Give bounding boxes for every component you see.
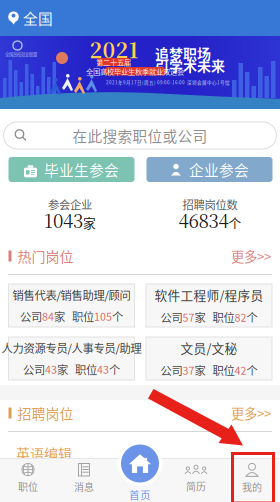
staticText: 更多>> [231, 246, 271, 266]
staticText: 家 [57, 361, 68, 377]
staticText: 软件工程师/程序员 [154, 286, 263, 304]
button[interactable]: 企业参会 [146, 157, 272, 182]
staticText: 追梦职场 [155, 43, 211, 63]
staticText: 37 [182, 362, 194, 378]
staticText: 公司 [20, 308, 42, 324]
staticText: 第二十五届 [96, 57, 131, 67]
staticText: 参会企业 [48, 196, 92, 212]
staticText: 简历 [186, 479, 206, 493]
button[interactable]: 软件工程师/程序员 [146, 284, 272, 327]
staticText: 职位 [75, 361, 97, 377]
staticText: 个 [112, 308, 123, 324]
button[interactable]: 首页 [112, 441, 168, 502]
staticText: 全国 [23, 7, 53, 29]
staticText: 家 [194, 362, 205, 378]
staticText: 全国高校就业联盟 [5, 51, 37, 57]
staticText: 82 [234, 309, 246, 325]
button[interactable]: 简历 [168, 458, 224, 502]
staticText: 职位 [72, 308, 94, 324]
staticText: 职位 [18, 479, 38, 494]
staticText: 个 [109, 361, 120, 377]
staticText: 公司 [160, 362, 182, 378]
staticText: 毕业生参会 [44, 159, 119, 180]
staticText: 招聘岗位 [17, 403, 73, 423]
staticText: 职位 [212, 309, 234, 325]
button[interactable]: 我的 [224, 458, 280, 502]
staticText: 家 [194, 309, 205, 325]
staticText: 1043 [44, 206, 83, 233]
button[interactable]: 职位 [0, 458, 56, 502]
button[interactable]: 人力资源专员/人事专员/助理 [8, 337, 134, 380]
button[interactable]: 毕业生参会 [8, 157, 134, 182]
staticText: 个 [246, 362, 257, 378]
staticText: 公司 [160, 309, 182, 325]
staticText: 职位 [212, 362, 234, 378]
staticText: 首页 [129, 487, 151, 502]
staticText: 42 [234, 362, 246, 378]
button[interactable]: 消息 [56, 458, 112, 502]
button[interactable]: 更多>> [221, 241, 280, 271]
staticText: 引学术未来 [155, 55, 225, 75]
button[interactable]: 销售代表/销售助理/顾问 [8, 284, 134, 327]
staticText: 家 [83, 213, 96, 232]
staticText: 在此搜索职位或公司 [72, 125, 207, 146]
staticText: 2021 [89, 34, 138, 64]
staticText: 更多>> [231, 403, 271, 423]
staticText: 2021年9月17日(周五) 09:00-16:00 深圳会展中心1号馆 [106, 79, 230, 86]
staticText: 企业参会 [189, 159, 249, 180]
staticText: 个 [228, 213, 241, 232]
staticText: 我的 [242, 480, 262, 494]
button[interactable]: 更多>> [221, 398, 280, 428]
staticText: 全国高校毕业生秋季就业双选会 [86, 66, 184, 76]
staticText: 43 [97, 361, 109, 377]
staticText: 57 [182, 309, 194, 325]
button[interactable]: 在此搜索职位或公司 [3, 122, 276, 149]
staticText: 43 [45, 361, 57, 377]
staticText: 热门岗位 [17, 246, 73, 266]
staticText: 销售代表/销售助理/顾问 [12, 287, 130, 303]
staticText: 家 [54, 308, 65, 324]
staticText: 46834 [178, 206, 228, 233]
button[interactable]: 文员/文秘 [146, 337, 272, 380]
staticText: 招聘岗位数 [182, 196, 237, 212]
staticText: 84 [42, 308, 54, 324]
staticText: 个 [246, 309, 257, 325]
staticText: 105 [94, 308, 112, 324]
staticText: 公司 [23, 361, 45, 377]
staticText: 文员/文秘 [180, 339, 237, 357]
staticText: 消息 [74, 479, 94, 494]
staticText: 英语编辑 [16, 443, 72, 463]
staticText: 人力资源专员/人事专员/助理 [1, 340, 141, 356]
button[interactable]: 全国 [0, 0, 61, 36]
